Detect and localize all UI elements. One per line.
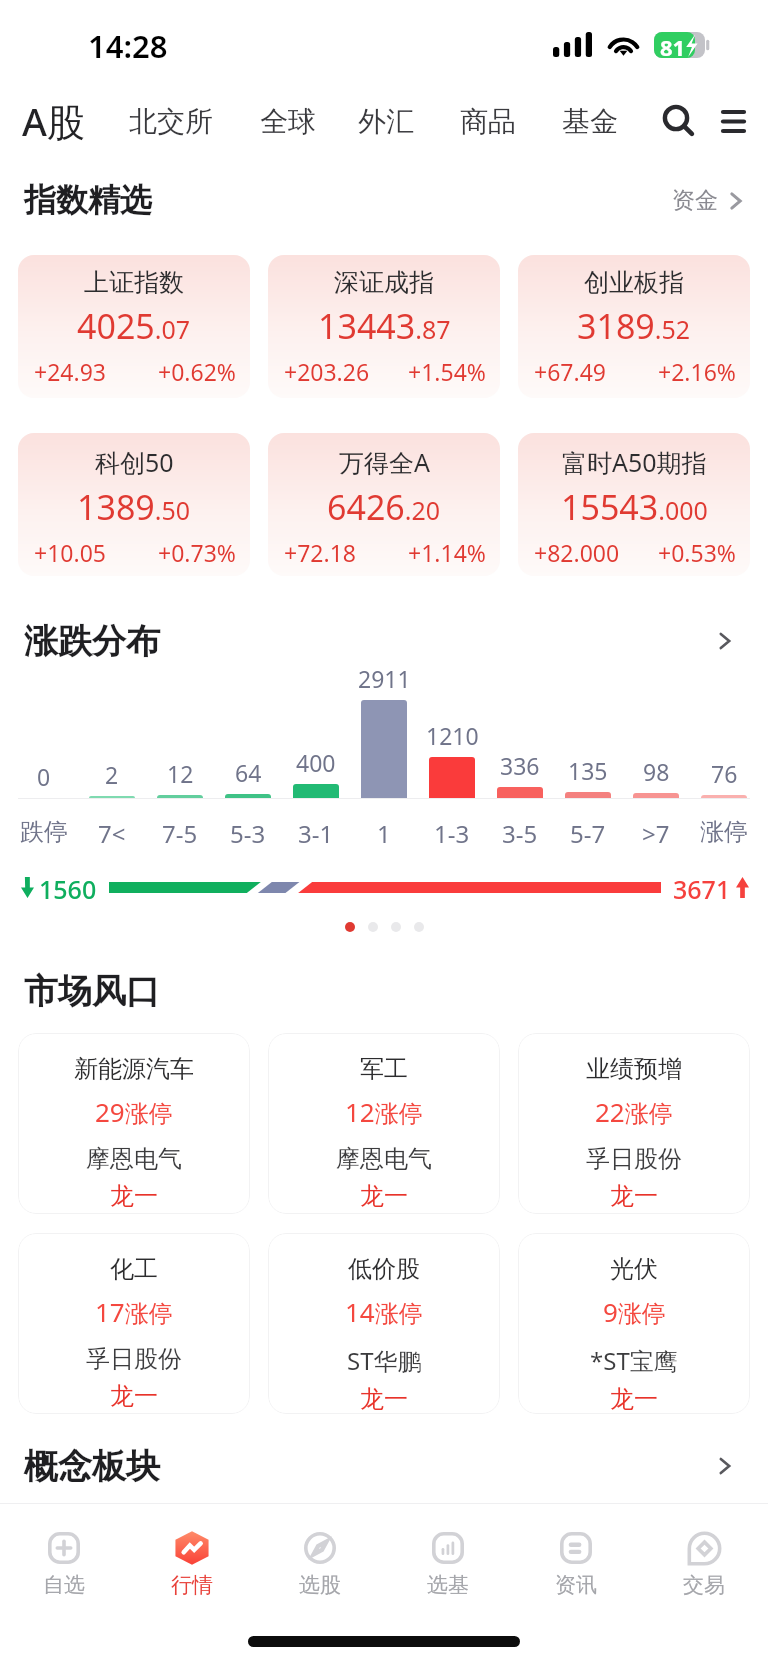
staticText: 富时A50期指 [562, 445, 707, 479]
button[interactable]: 科创50 [18, 433, 250, 576]
staticText: 64 [235, 757, 262, 788]
staticText: 科创50 [95, 445, 174, 479]
staticText: 深证成指 [334, 267, 434, 298]
button[interactable]: 业绩预增 [518, 1033, 750, 1214]
button[interactable]: Menu [710, 98, 756, 144]
staticText: >7 [642, 817, 670, 850]
staticText: 低价股 [348, 1254, 420, 1284]
staticText: 6426.20 [327, 484, 441, 530]
staticText: 化工 [110, 1254, 158, 1284]
button[interactable]: More [708, 1449, 742, 1483]
staticText: 22涨停 [595, 1094, 673, 1129]
button[interactable]: 上证指数 [18, 255, 250, 398]
staticText: 龙一 [610, 1181, 658, 1211]
staticText: 交易 [683, 1572, 725, 1598]
staticText: 12涨停 [345, 1094, 423, 1129]
button[interactable]: 军工 [268, 1033, 500, 1214]
staticText: 1560 [39, 872, 97, 902]
staticText: 选股 [299, 1572, 341, 1598]
staticText: 336 [500, 750, 540, 781]
staticText: A股 [22, 95, 85, 147]
button[interactable]: 化工 [18, 1233, 250, 1414]
staticText: 4025.07 [77, 303, 191, 349]
staticText: +0.62% [158, 356, 236, 387]
staticText: 孚日股份 [86, 1344, 182, 1374]
staticText: *ST宝鹰 [590, 1344, 678, 1377]
button[interactable]: 外汇 [337, 82, 437, 160]
staticText: 北交所 [129, 104, 213, 139]
staticText: 孚日股份 [586, 1144, 682, 1174]
button[interactable]: 资讯 [512, 1530, 640, 1598]
staticText: +0.53% [658, 537, 736, 568]
staticText: 3671 [673, 872, 731, 902]
staticText: 2911 [358, 663, 411, 694]
staticText: 创业板指 [584, 267, 684, 298]
staticText: 14涨停 [345, 1294, 423, 1329]
button[interactable]: 全球 [235, 82, 337, 160]
button[interactable]: 光伏 [518, 1233, 750, 1414]
button[interactable]: Search [656, 98, 702, 144]
staticText: 业绩预增 [586, 1054, 682, 1084]
staticText: 外汇 [358, 104, 414, 139]
staticText: +1.54% [408, 356, 486, 387]
staticText: +2.16% [658, 356, 736, 387]
staticText: 商品 [460, 104, 516, 139]
staticText: 新能源汽车 [74, 1054, 194, 1084]
staticText: 行情 [171, 1572, 213, 1598]
staticText: 资金 [672, 186, 718, 215]
staticText: 15543.000 [561, 484, 708, 530]
staticText: 98 [643, 756, 670, 787]
button[interactable]: 基金 [539, 82, 618, 160]
staticText: 9涨停 [603, 1294, 666, 1329]
button[interactable]: 选股 [256, 1530, 384, 1598]
staticText: +10.05 [34, 537, 106, 568]
staticText: 龙一 [110, 1381, 158, 1411]
button[interactable]: 万得全A [268, 433, 500, 576]
staticText: 龙一 [610, 1384, 658, 1414]
staticText: 万得全A [339, 445, 430, 479]
staticText: 7-5 [162, 817, 198, 850]
staticText: 3-1 [298, 817, 334, 850]
staticText: 资讯 [555, 1572, 597, 1598]
button[interactable]: 新能源汽车 [18, 1033, 250, 1214]
staticText: +0.73% [158, 537, 236, 568]
button[interactable]: 选基 [384, 1530, 512, 1598]
staticText: 光伏 [610, 1254, 658, 1284]
staticText: 龙一 [110, 1181, 158, 1211]
staticText: 81 [660, 32, 686, 58]
staticText: 400 [296, 747, 336, 778]
staticText: 13443.87 [318, 303, 451, 349]
staticText: 7< [98, 817, 126, 850]
button[interactable]: 交易 [640, 1530, 768, 1598]
button[interactable]: 富时A50期指 [518, 433, 750, 576]
staticText: 全球 [260, 104, 316, 139]
button[interactable]: 北交所 [107, 82, 235, 160]
staticText: 76 [711, 758, 738, 789]
staticText: 29涨停 [95, 1094, 173, 1129]
staticText: +24.93 [34, 356, 106, 387]
staticText: 3-5 [502, 817, 538, 850]
button[interactable]: 自选 [0, 1530, 128, 1598]
staticText: 5-7 [570, 817, 606, 850]
staticText: ST华鹏 [347, 1344, 422, 1377]
button[interactable]: 创业板指 [518, 255, 750, 398]
staticText: +72.18 [284, 537, 356, 568]
staticText: 14:28 [88, 25, 168, 67]
staticText: +67.49 [534, 356, 606, 387]
staticText: 5-3 [230, 817, 266, 850]
button[interactable]: More [708, 624, 742, 658]
staticText: 涨停 [700, 817, 748, 847]
button[interactable]: 行情 [128, 1530, 256, 1598]
button[interactable]: 低价股 [268, 1233, 500, 1414]
button[interactable]: 商品 [437, 82, 539, 160]
staticText: 市场风口 [24, 970, 160, 1013]
button[interactable]: A股 [22, 82, 107, 160]
button[interactable]: 资金 [672, 186, 742, 215]
staticText: 1210 [426, 720, 479, 751]
staticText: 摩恩电气 [86, 1144, 182, 1174]
staticText: 选基 [427, 1572, 469, 1598]
staticText: +82.000 [534, 537, 620, 568]
staticText: 自选 [43, 1572, 85, 1598]
staticText: 135 [568, 755, 608, 786]
button[interactable]: 深证成指 [268, 255, 500, 398]
